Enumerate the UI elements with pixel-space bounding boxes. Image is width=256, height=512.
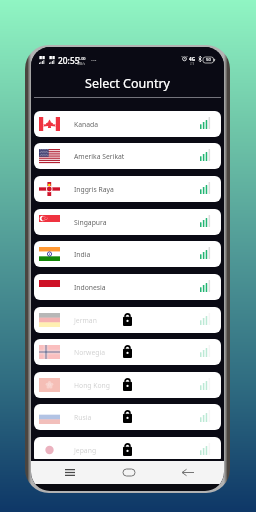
staticText: ...	[91, 54, 97, 64]
button[interactable]: India	[34, 241, 221, 267]
button[interactable]: Jerman	[34, 307, 221, 333]
button[interactable]: Singapura	[34, 209, 221, 235]
staticText: 4G	[189, 56, 195, 62]
staticText: Singapura	[74, 218, 107, 227]
button[interactable]: Home	[114, 461, 144, 484]
staticText: MB/s	[77, 61, 86, 66]
staticText: Select Country	[85, 75, 170, 92]
button[interactable]: Rusia	[34, 404, 221, 430]
button[interactable]: Norwegia	[34, 339, 221, 365]
staticText: LTE	[190, 62, 195, 66]
staticText: Jerman	[74, 316, 97, 325]
button[interactable]: Back	[173, 461, 203, 484]
staticText: 20:55	[58, 55, 80, 66]
button[interactable]: Indonesia	[34, 274, 221, 300]
staticText: 5.00	[78, 56, 86, 61]
staticText: Indonesia	[74, 283, 106, 292]
button[interactable]: Kanada	[34, 111, 221, 137]
staticText: Jepang	[74, 446, 97, 455]
staticText: Amerika Serikat	[74, 152, 125, 161]
button[interactable]: Inggris Raya	[34, 176, 221, 202]
staticText: India	[74, 250, 91, 259]
staticText: Kanada	[74, 120, 99, 129]
button[interactable]: Jepang	[34, 437, 221, 459]
button[interactable]: Hong Kong	[34, 372, 221, 398]
staticText: Hong Kong	[74, 381, 110, 390]
button[interactable]: Amerika Serikat	[34, 143, 221, 169]
staticText: Rusia	[74, 413, 92, 422]
staticText: Norwegia	[74, 348, 106, 357]
staticText: 50	[206, 57, 211, 63]
button[interactable]: Recents	[55, 461, 85, 484]
staticText: Inggris Raya	[74, 185, 114, 194]
